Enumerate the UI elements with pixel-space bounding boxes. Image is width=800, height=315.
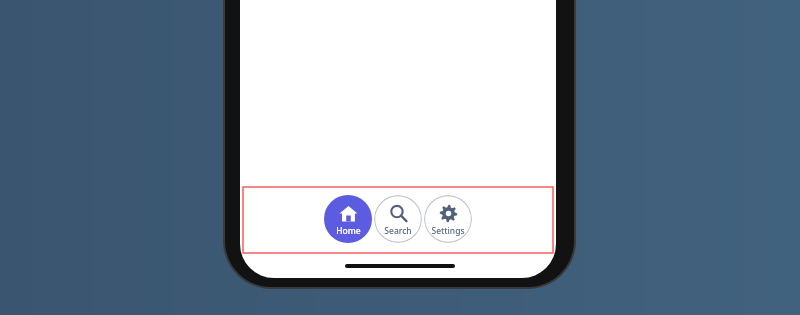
staticText: Settings <box>431 225 465 237</box>
button[interactable]: Search <box>374 195 422 243</box>
staticText: Search <box>384 225 412 237</box>
staticText: Home <box>336 225 361 237</box>
button[interactable]: Settings <box>424 195 472 243</box>
button[interactable]: Home <box>324 195 372 243</box>
